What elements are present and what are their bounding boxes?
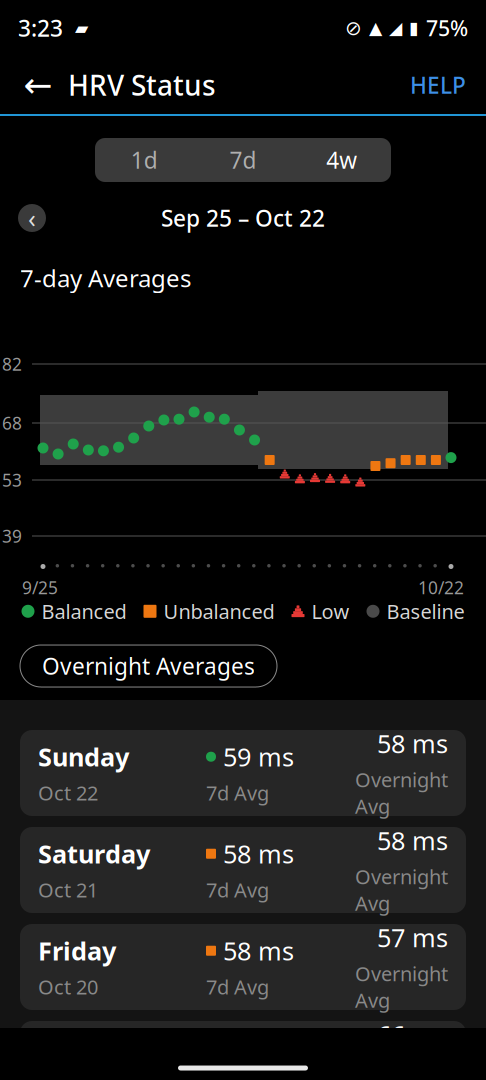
- staticText: 68: [2, 411, 22, 434]
- staticText: HRV Status: [68, 66, 216, 104]
- staticText: ‹: [28, 201, 36, 235]
- staticText: Saturday: [38, 837, 150, 870]
- staticText: 3:23: [18, 13, 63, 43]
- staticText: Balanced: [41, 598, 126, 625]
- staticText: 58 ms: [377, 824, 448, 857]
- staticText: Overnight Avg: [355, 960, 448, 1013]
- staticText: Overnight Avg: [355, 766, 448, 819]
- staticText: ◢: [389, 18, 402, 38]
- staticText: Low: [311, 598, 349, 625]
- staticText: 53: [2, 468, 22, 491]
- staticText: ▰: [63, 18, 88, 38]
- button[interactable]: 1d: [95, 138, 194, 182]
- button[interactable]: Overnight Averages: [20, 645, 277, 687]
- button[interactable]: HELP: [404, 61, 472, 109]
- staticText: 4w: [326, 145, 357, 175]
- staticText: 59 ms: [223, 740, 294, 773]
- staticText: ⊘: [345, 17, 362, 39]
- staticText: Sep 25 – Oct 22: [161, 203, 325, 233]
- staticText: Oct 20: [38, 973, 98, 1000]
- staticText: 75%: [426, 14, 468, 42]
- button[interactable]: Friday: [20, 924, 466, 1010]
- button[interactable]: Back: [14, 61, 62, 109]
- staticText: 66 ms: [377, 1018, 448, 1051]
- staticText: 7d Avg: [206, 973, 269, 1000]
- staticText: Overnight Averages: [42, 651, 255, 681]
- button[interactable]: Sunday: [20, 730, 466, 816]
- button[interactable]: Saturday: [20, 827, 466, 913]
- button[interactable]: Previous period: [18, 204, 46, 232]
- staticText: Overnight Avg: [355, 863, 448, 916]
- staticText: ←: [23, 65, 52, 105]
- staticText: 58 ms: [223, 837, 294, 870]
- staticText: 58 ms: [223, 934, 294, 967]
- staticText: 9/25: [22, 576, 58, 599]
- staticText: 7d Avg: [206, 876, 269, 903]
- staticText: 7d: [229, 145, 256, 175]
- staticText: 10/22: [418, 576, 464, 599]
- staticText: 1d: [131, 145, 158, 175]
- staticText: 39: [2, 524, 22, 547]
- staticText: Oct 21: [38, 876, 98, 903]
- staticText: Sunday: [38, 740, 129, 773]
- staticText: Baseline: [386, 598, 464, 625]
- staticText: ▲: [369, 18, 382, 38]
- button[interactable]: 7d: [194, 138, 292, 182]
- staticText: 57 ms: [377, 921, 448, 954]
- staticText: 7d Avg: [206, 779, 269, 806]
- staticText: HELP: [410, 70, 466, 100]
- staticText: 7-day Averages: [20, 262, 191, 294]
- staticText: ▮: [409, 18, 419, 38]
- button[interactable]: Thursday: [20, 1021, 466, 1080]
- staticText: 58 ms: [377, 727, 448, 760]
- staticText: 82: [2, 352, 22, 375]
- staticText: Unbalanced: [163, 598, 274, 625]
- staticText: Friday: [38, 934, 116, 967]
- staticText: 7d Avg: [206, 1070, 269, 1080]
- button[interactable]: 4w: [292, 138, 391, 182]
- staticText: Oct 22: [38, 779, 98, 806]
